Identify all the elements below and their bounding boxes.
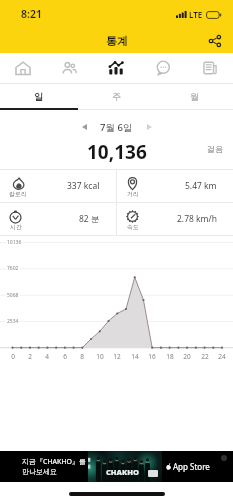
button[interactable]: 일	[0, 84, 77, 110]
staticText: LTE	[189, 9, 203, 20]
staticText: 월	[190, 91, 199, 102]
staticText: 10,136	[87, 139, 147, 165]
staticText: 7602	[7, 265, 19, 272]
button[interactable]: Previous day	[73, 116, 95, 138]
staticText: 337 kcal	[67, 180, 100, 192]
staticText: 지금『CHAKHO』를 만나보세요	[22, 457, 87, 476]
button[interactable]: Chat	[139, 53, 186, 83]
staticText: App Store	[173, 461, 210, 472]
button[interactable]: 칼로리	[0, 170, 116, 202]
button[interactable]: 지금『CHAKHO』를 만나보세요	[0, 451, 233, 482]
button[interactable]: 시간	[0, 203, 116, 235]
staticText: 82 분	[79, 213, 100, 225]
staticText: 5068	[7, 292, 19, 299]
staticText: 주	[112, 91, 121, 102]
staticText: 7월 6일	[100, 121, 133, 134]
staticText: 0	[11, 352, 15, 361]
staticText: 6	[63, 352, 67, 361]
staticText: 18	[166, 352, 174, 361]
staticText: 거리	[127, 190, 139, 198]
staticText: 8:21	[21, 7, 42, 21]
button[interactable]: Friends	[46, 53, 92, 83]
staticText: 20	[183, 352, 191, 361]
staticText: 칼로리	[9, 190, 27, 198]
staticText: 22	[201, 352, 209, 361]
staticText: 2534	[7, 318, 19, 325]
staticText: 2	[28, 352, 32, 361]
button[interactable]: Statistics	[92, 53, 139, 83]
button[interactable]: Next day	[138, 116, 160, 138]
button[interactable]: 월	[155, 84, 233, 110]
staticText: 속도	[127, 223, 139, 231]
staticText: 걸음	[207, 144, 223, 154]
staticText: 일	[34, 91, 43, 102]
staticText: 16	[148, 352, 156, 361]
button[interactable]: Share	[205, 31, 225, 51]
staticText: 14	[131, 352, 139, 361]
button[interactable]: Home	[0, 53, 46, 83]
button[interactable]: 속도	[117, 203, 233, 235]
button[interactable]: 거리	[117, 170, 233, 202]
staticText: 2.78 km/h	[177, 213, 217, 225]
staticText: 8	[80, 352, 84, 361]
staticText: 10136	[7, 239, 22, 246]
staticText: 12	[113, 352, 121, 361]
staticText: 24	[218, 352, 226, 361]
button[interactable]: Close ad	[221, 455, 227, 461]
staticText: 4	[45, 352, 49, 361]
staticText: 10	[96, 352, 104, 361]
staticText: 통계	[106, 34, 128, 48]
staticText: CHAKHO	[106, 467, 139, 477]
staticText: 5.47 km	[185, 180, 217, 192]
button[interactable]: 주	[77, 84, 155, 110]
staticText: 시간	[10, 223, 22, 231]
button[interactable]: News	[186, 53, 233, 83]
